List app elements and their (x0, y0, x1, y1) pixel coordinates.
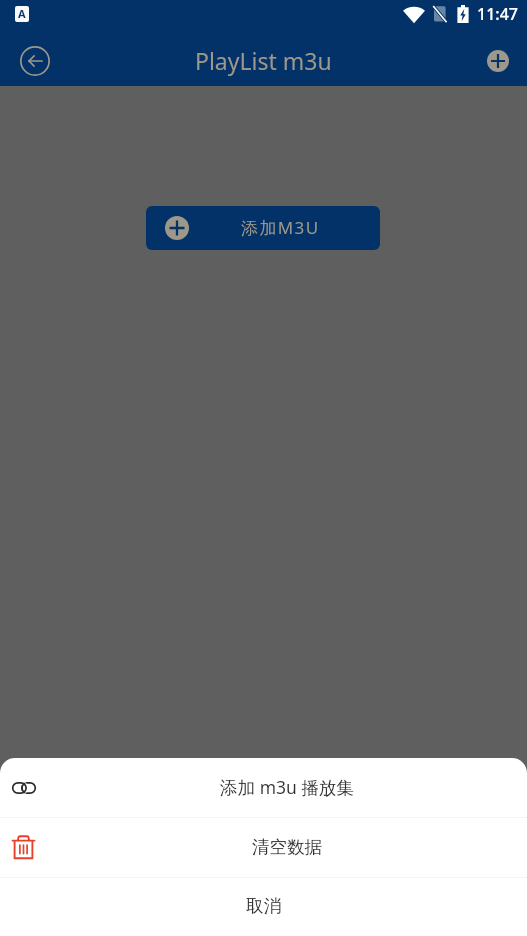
button[interactable]: 取消 (0, 878, 527, 936)
button[interactable]: Add (482, 45, 514, 77)
staticText: A (18, 6, 26, 21)
staticText: 清空数据 (252, 836, 322, 858)
button[interactable]: 添加 m3u 播放集 (0, 758, 527, 817)
staticText: 添加M3U (241, 216, 320, 239)
staticText: PlayList m3u (195, 45, 332, 76)
staticText: 添加 m3u 播放集 (220, 775, 354, 799)
button[interactable]: Back (17, 43, 53, 79)
button[interactable]: 添加M3U (146, 206, 380, 250)
button[interactable]: 清空数据 (0, 818, 527, 877)
staticText: 11:47 (477, 3, 518, 25)
staticText: 取消 (246, 895, 281, 917)
